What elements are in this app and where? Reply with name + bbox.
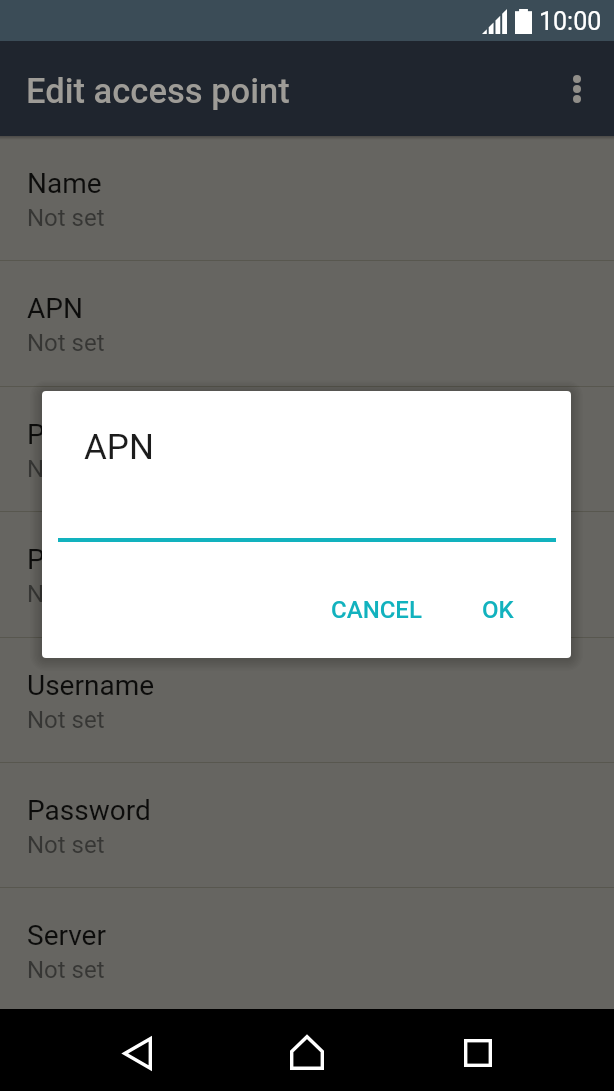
staticText: Edit access point: [26, 71, 290, 111]
staticText: Server: [27, 919, 106, 952]
staticText: Not set: [27, 956, 105, 984]
button[interactable]: Username: [0, 638, 614, 762]
button[interactable]: APN: [0, 261, 614, 385]
button[interactable]: Recents: [437, 1009, 519, 1091]
button[interactable]: OK: [474, 581, 522, 639]
staticText: Not set: [27, 455, 105, 483]
staticText: Not set: [27, 204, 105, 232]
staticText: Name: [27, 167, 102, 200]
staticText: OK: [482, 596, 514, 624]
staticText: Not set: [27, 329, 105, 357]
staticText: Not set: [27, 831, 105, 859]
staticText: Username: [27, 669, 155, 702]
button[interactable]: Back: [96, 1009, 178, 1091]
staticText: Not set: [27, 580, 105, 608]
staticText: APN: [27, 292, 83, 325]
staticText: Password: [27, 794, 151, 827]
staticText: Not set: [27, 706, 105, 734]
button[interactable]: Home: [266, 1009, 348, 1091]
button[interactable]: Proxy: [0, 387, 614, 511]
staticText: CANCEL: [331, 596, 422, 624]
staticText: 10:00: [539, 7, 602, 36]
button[interactable]: APN text field: [58, 487, 556, 542]
staticText: APN: [84, 427, 154, 468]
staticText: Proxy: [27, 418, 97, 451]
button[interactable]: Port: [0, 512, 614, 636]
button[interactable]: More options: [546, 58, 608, 120]
staticText: Port: [27, 543, 80, 576]
button[interactable]: Password: [0, 763, 614, 887]
button[interactable]: Server: [0, 888, 614, 1012]
button[interactable]: CANCEL: [323, 581, 430, 639]
button[interactable]: Name: [0, 136, 614, 260]
